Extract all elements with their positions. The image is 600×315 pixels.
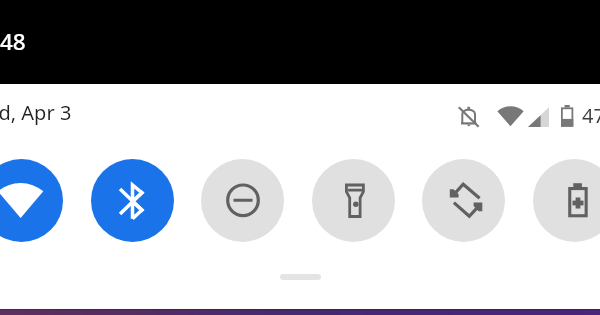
button[interactable]: Bluetooth (91, 159, 174, 242)
button[interactable]: Flashlight (312, 159, 395, 242)
button[interactable]: Do Not Disturb (201, 159, 284, 242)
staticText: 9:48 (0, 26, 26, 57)
button[interactable]: Expand (280, 274, 321, 280)
button[interactable]: Wi-Fi (0, 159, 63, 242)
staticText: 47% (582, 102, 600, 129)
button[interactable]: Auto-rotate (422, 159, 505, 242)
button[interactable]: Battery Saver (533, 159, 600, 242)
staticText: Wed, Apr 3 (0, 99, 72, 126)
